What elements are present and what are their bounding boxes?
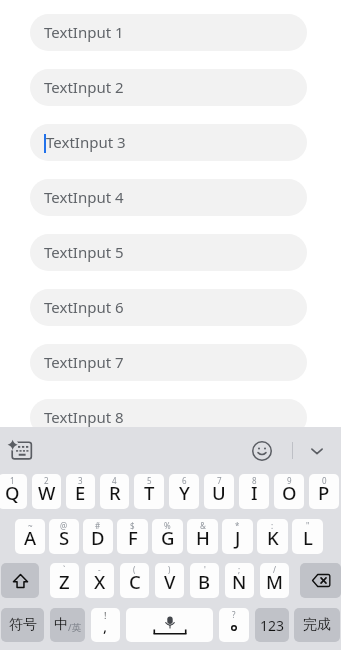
button[interactable]: 2 <box>32 474 61 509</box>
staticText: 123 <box>260 616 285 635</box>
staticText: W <box>38 480 56 505</box>
staticText: L <box>303 525 313 550</box>
button[interactable]: * <box>222 519 253 554</box>
staticText: ~ <box>28 520 33 531</box>
button[interactable]: % <box>152 519 183 554</box>
button[interactable]: Chinese English toggle <box>50 608 85 642</box>
button[interactable]: Hide keyboard <box>301 435 332 466</box>
button[interactable]: Period <box>219 608 249 642</box>
staticText: ` <box>63 564 66 575</box>
staticText: TextInput 1 <box>44 22 124 42</box>
staticText: TextInput 2 <box>44 77 124 97</box>
button[interactable]: TextInput 7 <box>30 344 307 381</box>
staticText: ' <box>204 564 206 575</box>
staticText: D <box>91 525 105 550</box>
button[interactable]: ; <box>225 563 254 598</box>
staticText: TextInput 6 <box>44 297 124 317</box>
staticText: TextInput 8 <box>44 407 124 427</box>
staticText: U <box>212 480 226 505</box>
button[interactable]: TextInput 8 <box>30 399 307 436</box>
button[interactable]: / <box>260 563 289 598</box>
staticText: ; <box>238 564 241 575</box>
button[interactable]: TextInput 4 <box>30 179 307 216</box>
staticText: ? <box>232 609 236 620</box>
staticText: N <box>232 569 247 594</box>
staticText: Q <box>5 480 20 505</box>
button[interactable]: # <box>83 519 113 554</box>
button[interactable]: 0 <box>309 474 339 509</box>
button[interactable]: ~ <box>15 519 45 554</box>
staticText: H <box>196 525 210 550</box>
staticText: 9 <box>287 475 292 486</box>
staticText: S <box>59 525 70 550</box>
staticText: R <box>109 480 121 505</box>
staticText: * <box>235 520 240 531</box>
staticText: , <box>103 616 108 636</box>
staticText: ) <box>168 564 171 575</box>
button[interactable]: ' <box>190 563 219 598</box>
button[interactable]: 123 <box>255 608 289 642</box>
button[interactable]: 符号 <box>1 608 44 642</box>
staticText: Y <box>179 480 190 505</box>
button[interactable]: & <box>187 519 218 554</box>
staticText: - <box>98 564 101 575</box>
staticText: G <box>161 525 175 550</box>
staticText: O <box>282 480 297 505</box>
button[interactable]: 3 <box>66 474 95 509</box>
staticText: M <box>266 569 283 594</box>
button[interactable]: 1 <box>0 474 27 509</box>
button[interactable]: 4 <box>100 474 129 509</box>
button[interactable]: " <box>292 519 323 554</box>
staticText: / <box>273 564 276 575</box>
button[interactable]: Shift <box>1 563 39 598</box>
staticText: /英 <box>68 621 82 634</box>
button[interactable]: ( <box>120 563 149 598</box>
staticText: ! <box>104 609 107 621</box>
staticText: X <box>94 569 106 594</box>
button[interactable]: TextInput 1 <box>30 14 307 51</box>
staticText: Z <box>59 569 70 594</box>
button[interactable]: 8 <box>239 474 269 509</box>
button[interactable]: TextInput 5 <box>30 234 307 271</box>
button[interactable]: Backspace <box>300 563 341 598</box>
staticText: " <box>306 520 310 531</box>
button[interactable]: @ <box>49 519 79 554</box>
staticText: P <box>318 480 330 505</box>
staticText: 8 <box>252 475 257 486</box>
button[interactable]: ) <box>155 563 184 598</box>
button[interactable]: 6 <box>169 474 199 509</box>
button[interactable]: 9 <box>274 474 304 509</box>
staticText: 中 <box>54 616 68 634</box>
staticText: B <box>198 569 211 594</box>
button[interactable]: $ <box>117 519 148 554</box>
staticText: I <box>251 480 258 505</box>
button[interactable]: Space <box>126 608 213 642</box>
staticText: 符号 <box>9 616 37 634</box>
button[interactable]: TextInput 2 <box>30 69 307 106</box>
button[interactable]: 5 <box>134 474 164 509</box>
staticText: 7 <box>217 475 222 486</box>
staticText: TextInput 5 <box>44 242 124 262</box>
button[interactable]: : <box>257 519 288 554</box>
staticText: & <box>200 520 206 531</box>
staticText: E <box>75 480 86 505</box>
button[interactable]: Emoji <box>246 435 277 466</box>
button[interactable]: TextInput 6 <box>30 289 307 326</box>
staticText: TextInput 4 <box>44 187 124 207</box>
button[interactable]: - <box>85 563 114 598</box>
staticText: % <box>164 520 171 531</box>
button[interactable]: TextInput 3 <box>30 124 307 161</box>
staticText: 0 <box>322 475 327 486</box>
staticText: V <box>164 569 176 594</box>
staticText: 5 <box>147 475 152 486</box>
staticText: TextInput 3 <box>46 132 126 152</box>
staticText: TextInput 7 <box>44 352 124 372</box>
button[interactable]: Keyboard settings <box>5 435 36 466</box>
staticText: F <box>128 525 138 550</box>
staticText: ( <box>133 564 136 575</box>
staticText: A <box>24 525 37 550</box>
button[interactable]: ! <box>91 608 120 642</box>
button[interactable]: 完成 <box>294 608 340 642</box>
button[interactable]: 7 <box>204 474 234 509</box>
button[interactable]: ` <box>50 563 79 598</box>
